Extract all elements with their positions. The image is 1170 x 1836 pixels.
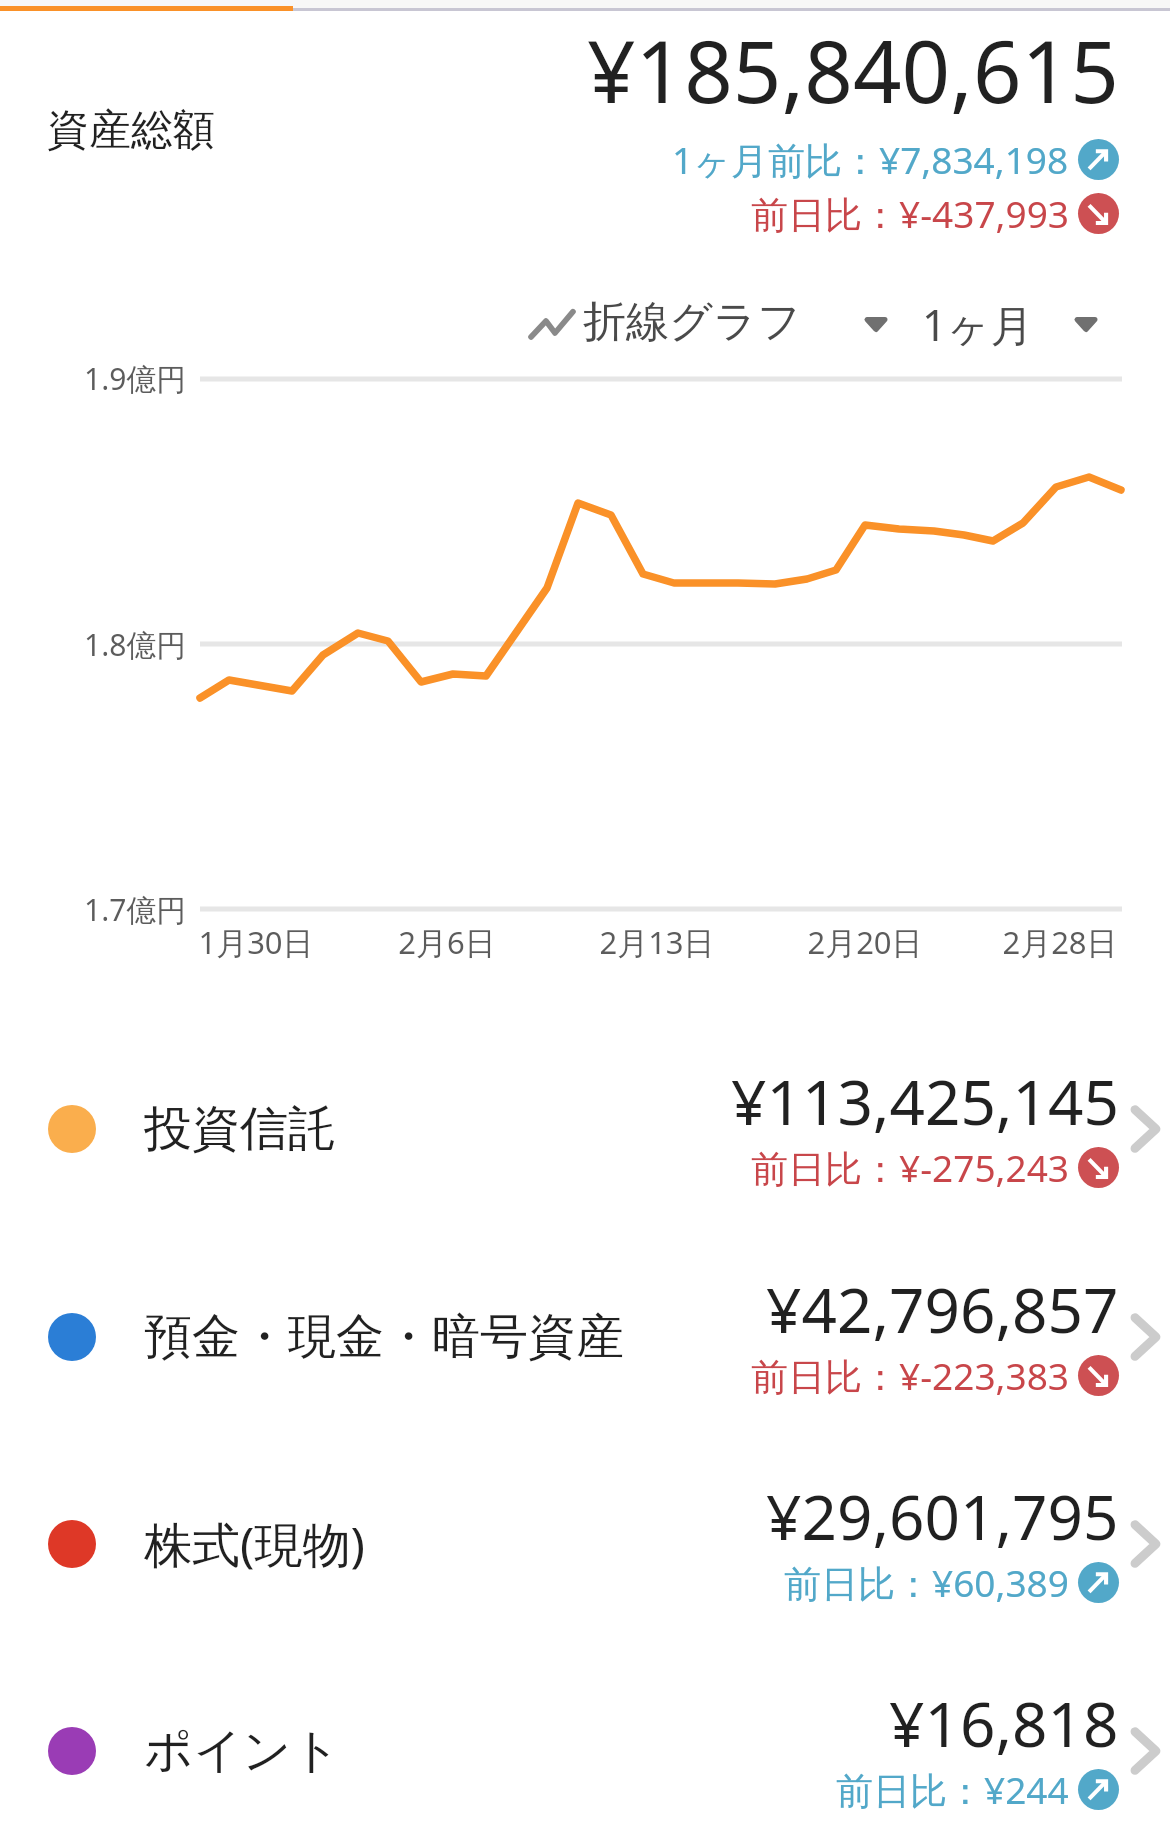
button[interactable]: 預金・現金・暗号資産 xyxy=(0,1233,1170,1440)
other: 詳細を開く xyxy=(1131,1314,1160,1360)
staticText: 前日比：¥-275,243 xyxy=(751,1142,1069,1193)
staticText: 前日比：¥60,389 xyxy=(784,1557,1069,1608)
staticText: 前日比：¥244 xyxy=(836,1764,1069,1815)
staticText: ¥29,601,795 xyxy=(766,1474,1119,1558)
staticText: 折線グラフ xyxy=(583,295,802,349)
button[interactable]: 投資信託 xyxy=(0,1025,1170,1232)
staticText: 1ヶ月 xyxy=(922,295,1034,354)
staticText: 2月13日 xyxy=(537,921,777,963)
staticText: 1月30日 xyxy=(136,921,376,963)
staticText: 投資信託 xyxy=(144,1099,336,1159)
button[interactable]: 株式(現物) xyxy=(0,1440,1170,1647)
staticText: 2月20日 xyxy=(745,921,985,963)
staticText: 株式(現物) xyxy=(144,1511,365,1577)
staticText: ¥16,818 xyxy=(889,1681,1119,1765)
staticText: 2月28日 xyxy=(940,921,1170,963)
staticText: 前日比：¥-437,993 xyxy=(751,188,1069,239)
staticText: ¥113,425,145 xyxy=(731,1059,1119,1143)
staticText: ポイント xyxy=(144,1721,341,1781)
staticText: 2月6日 xyxy=(327,921,567,963)
staticText: 資産総額 xyxy=(47,104,215,157)
other: 詳細を開く xyxy=(1131,1106,1160,1152)
button[interactable]: 1ヶ月 xyxy=(918,292,1108,356)
other: 詳細を開く xyxy=(1131,1728,1160,1774)
button[interactable]: ポイント xyxy=(0,1647,1170,1836)
staticText: 1.8億円 xyxy=(84,624,187,665)
staticText: 前日比：¥-223,383 xyxy=(751,1350,1069,1401)
staticText: 1.7億円 xyxy=(84,889,187,930)
staticText: ¥42,796,857 xyxy=(766,1267,1119,1351)
staticText: 預金・現金・暗号資産 xyxy=(144,1307,624,1367)
staticText: 1ヶ月前比：¥7,834,198 xyxy=(672,134,1069,185)
other: 詳細を開く xyxy=(1131,1521,1160,1567)
staticText: 1.9億円 xyxy=(84,358,187,399)
staticText: ¥185,840,615 xyxy=(587,12,1119,128)
button[interactable]: 折線グラフ xyxy=(520,292,900,356)
